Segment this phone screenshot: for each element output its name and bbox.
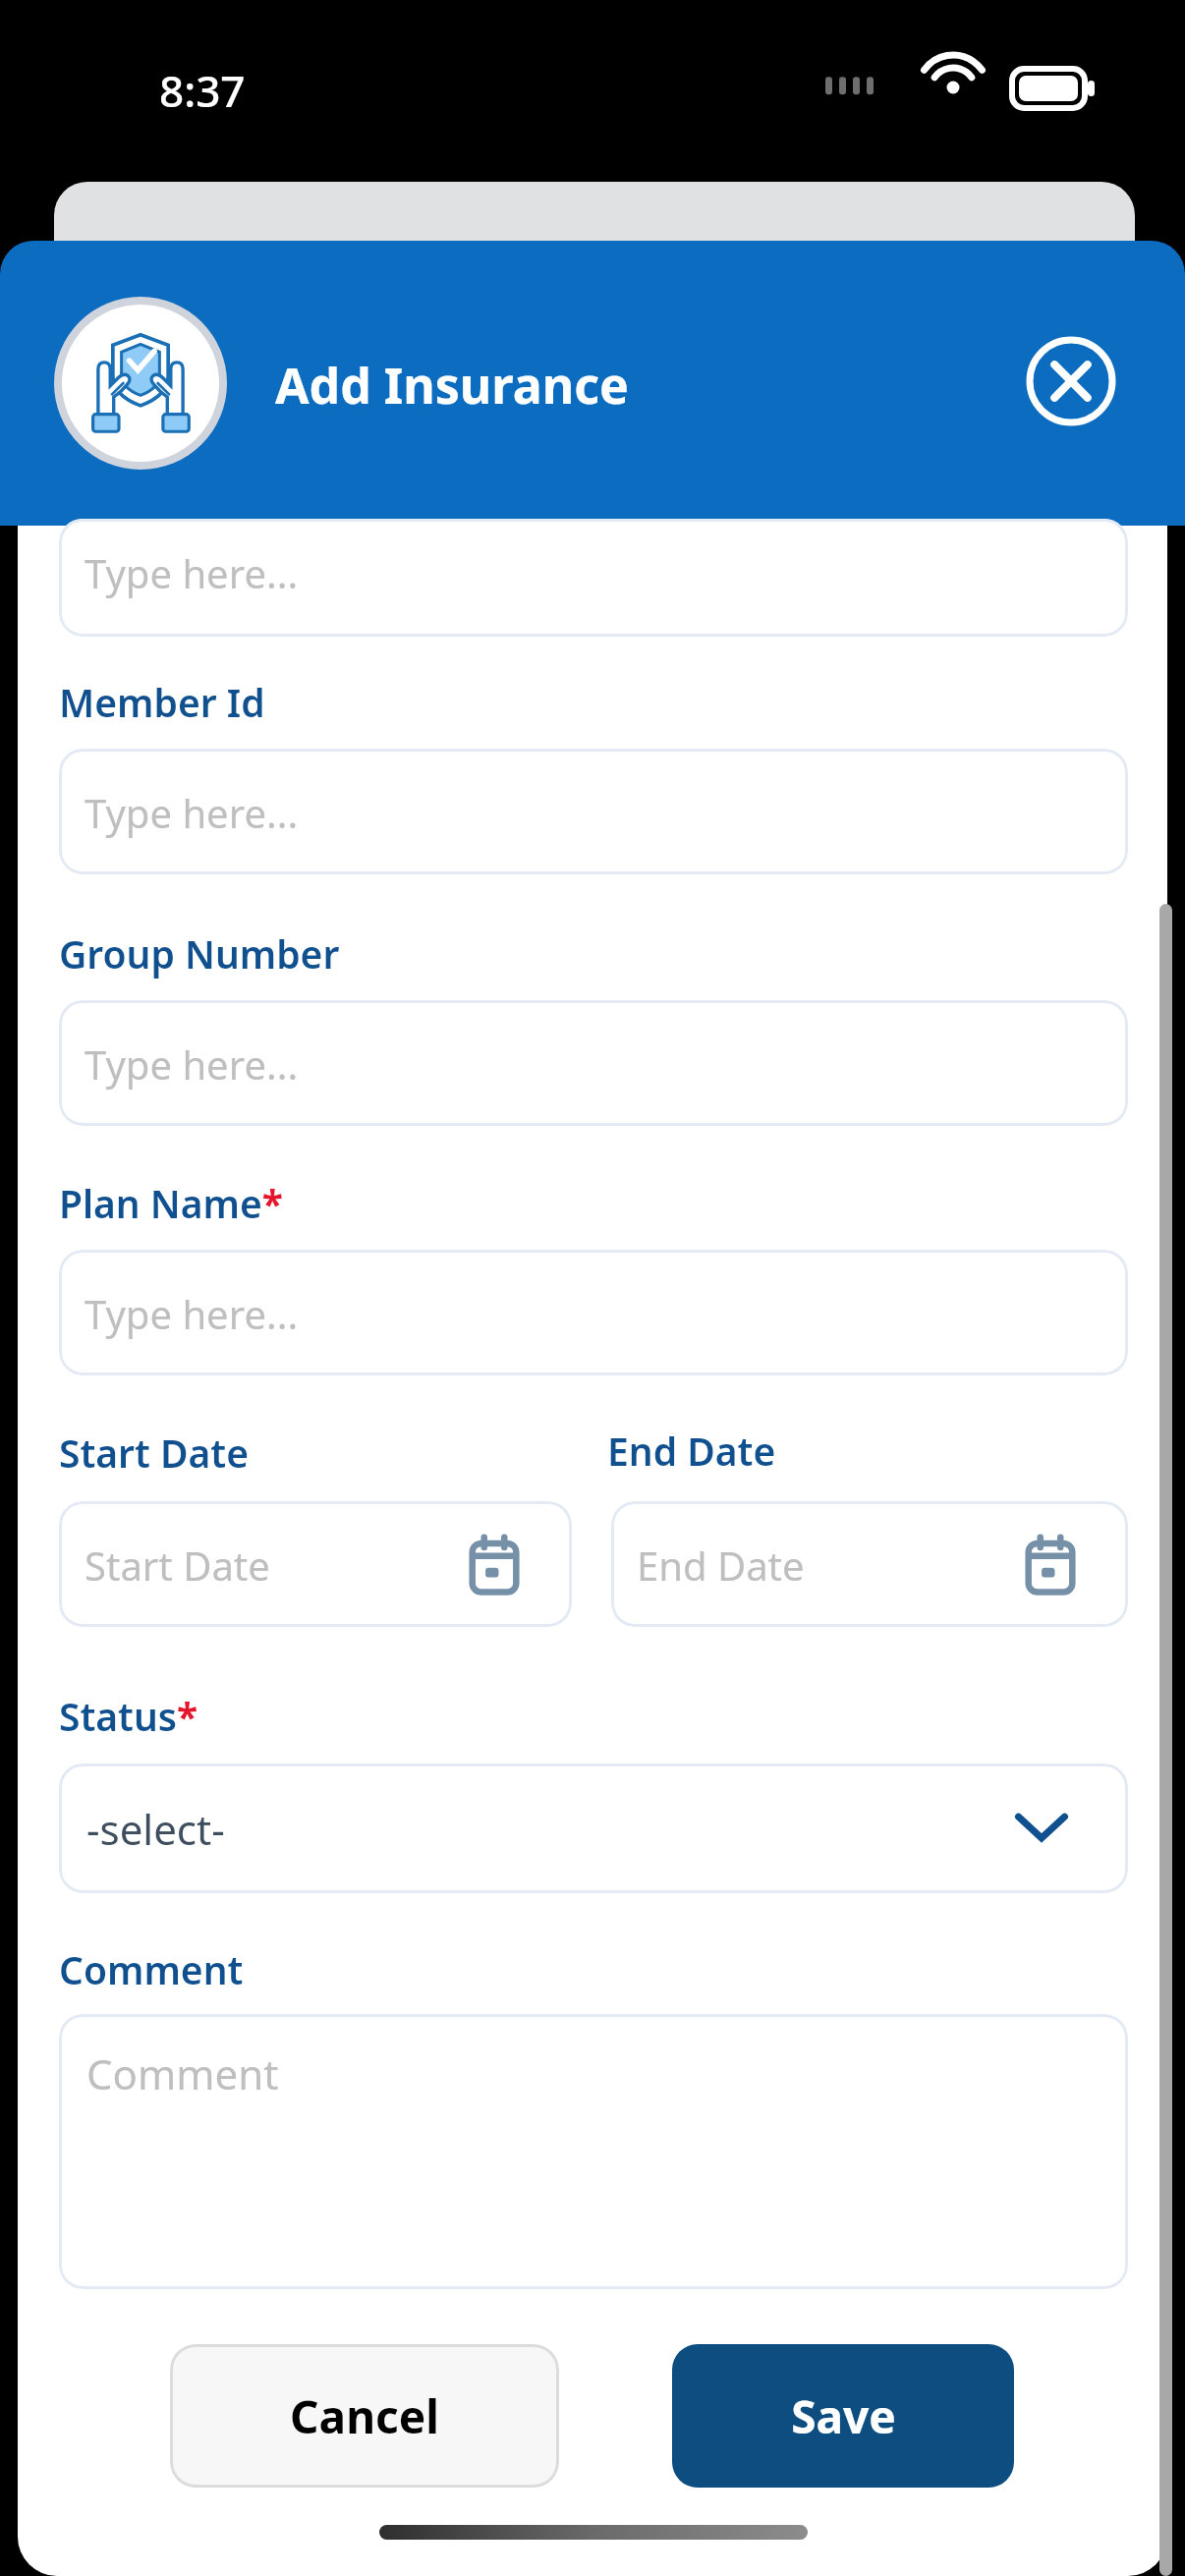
staticText: Comment (86, 2045, 279, 2101)
staticText: Start Date (59, 1427, 250, 1479)
staticText: End Date (607, 1425, 776, 1477)
button[interactable]: Comment (59, 2014, 1128, 2289)
staticText: Plan Name* (59, 1177, 283, 1229)
button[interactable]: -select- (59, 1764, 1128, 1893)
staticText: Cancel (290, 2385, 439, 2447)
staticText: 8:37 (159, 61, 246, 120)
staticText: Type here... (85, 546, 299, 599)
button[interactable]: Save (672, 2344, 1014, 2488)
staticText: Member Id (59, 676, 265, 728)
button[interactable]: Type here... (59, 1000, 1128, 1126)
button[interactable]: Start Date (59, 1501, 572, 1627)
button[interactable]: Close (1025, 335, 1117, 427)
staticText: Comment (59, 1943, 244, 1995)
button[interactable]: Cancel (170, 2344, 559, 2488)
staticText: Save (791, 2385, 896, 2447)
staticText: Add Insurance (275, 352, 629, 419)
staticText: Start Date (85, 1539, 270, 1592)
staticText: Type here... (85, 1037, 299, 1091)
staticText: Group Number (59, 927, 340, 980)
staticText: -select- (86, 1801, 225, 1857)
staticText: Status* (59, 1690, 198, 1742)
button[interactable]: End Date (611, 1501, 1128, 1627)
button[interactable]: Type here... (59, 749, 1128, 874)
staticText: End Date (637, 1539, 805, 1592)
button[interactable]: Type here... (59, 1250, 1128, 1375)
button[interactable]: Type here... (59, 519, 1128, 637)
staticText: Type here... (85, 786, 299, 839)
staticText: Type here... (85, 1287, 299, 1340)
